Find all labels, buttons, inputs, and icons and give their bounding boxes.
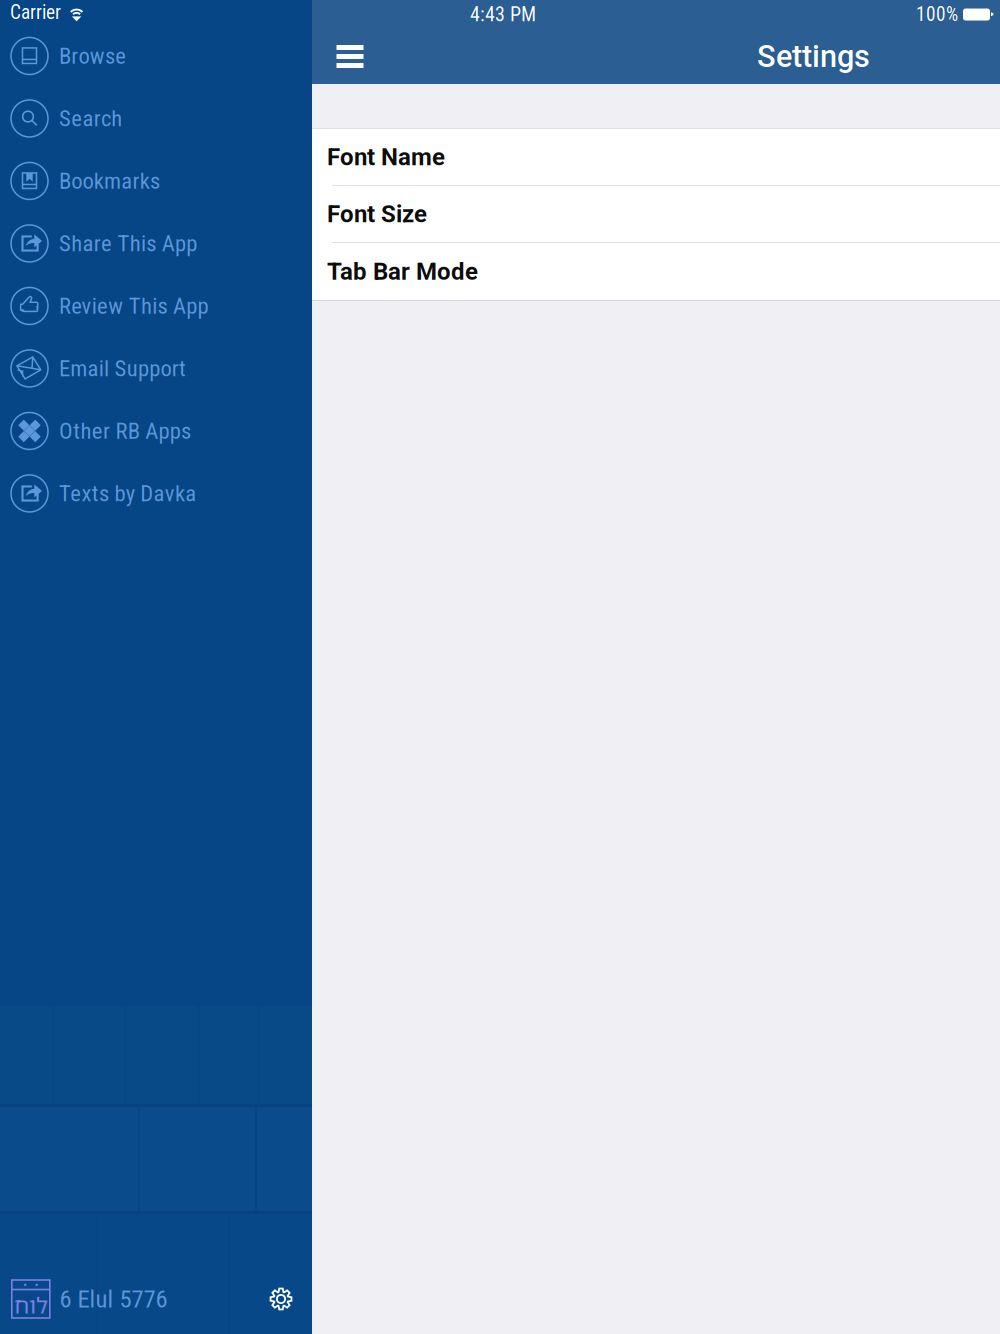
button[interactable]: Font Name	[312, 129, 1000, 186]
button[interactable]: Share This App	[0, 212, 312, 275]
staticText: Email Support	[59, 355, 186, 382]
staticText: Texts by Davka	[59, 480, 196, 507]
staticText: Settings	[757, 38, 870, 74]
staticText: 6 Elul 5776	[60, 1284, 168, 1313]
button[interactable]: Search	[0, 87, 312, 150]
button[interactable]: לוח	[0, 1279, 168, 1319]
button[interactable]: Settings	[259, 1277, 303, 1321]
button[interactable]: Bookmarks	[0, 150, 312, 212]
staticText: 100%	[916, 3, 958, 26]
staticText: Font Size	[327, 200, 427, 228]
staticText: Bookmarks	[59, 168, 160, 194]
staticText: Tab Bar Mode	[327, 257, 478, 285]
button[interactable]: Menu	[327, 33, 373, 79]
staticText: Font Name	[327, 143, 445, 171]
button[interactable]: Tab Bar Mode	[312, 243, 1000, 300]
staticText: לוח	[14, 1289, 48, 1320]
button[interactable]: Other RB Apps	[0, 400, 312, 462]
button[interactable]: Email Support	[0, 337, 312, 400]
button[interactable]: Browse	[0, 25, 312, 87]
staticText: Browse	[59, 43, 126, 69]
staticText: Carrier	[10, 1, 61, 24]
button[interactable]: Texts by Davka	[0, 462, 312, 525]
button[interactable]: Review This App	[0, 275, 312, 337]
button[interactable]: Font Size	[312, 186, 1000, 243]
staticText: Other RB Apps	[59, 418, 191, 444]
staticText: Review This App	[59, 293, 208, 319]
staticText: 4:43 PM	[470, 3, 536, 26]
staticText: Search	[59, 105, 122, 132]
staticText: Share This App	[59, 230, 197, 257]
